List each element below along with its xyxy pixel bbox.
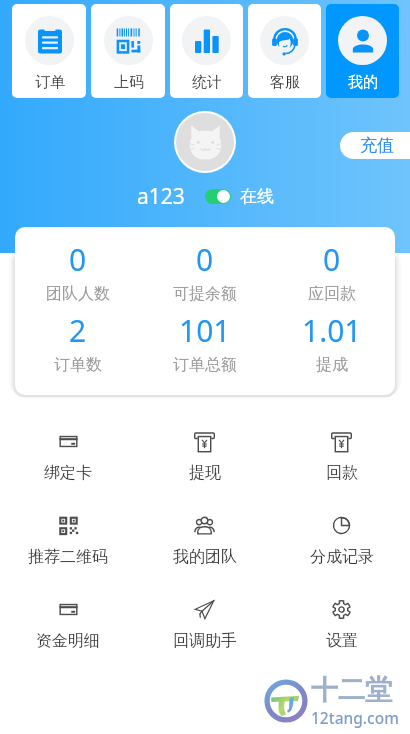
button[interactable]: 0 (15, 239, 141, 304)
staticText: 回调助手 (173, 631, 237, 651)
staticText: 0 (196, 239, 214, 280)
staticText: 资金明细 (36, 631, 100, 651)
staticText: 101 (179, 310, 231, 351)
button[interactable]: 客服 (248, 4, 321, 98)
staticText: 分成记录 (310, 547, 374, 567)
button[interactable]: 2 (15, 310, 141, 375)
staticText: 回款 (326, 463, 358, 483)
button[interactable]: 充值 (340, 132, 410, 159)
staticText: 订单 (35, 73, 65, 92)
button[interactable]: 推荐二维码 (0, 499, 136, 583)
staticText: 1.01 (302, 310, 362, 351)
button[interactable]: 我的 (326, 4, 399, 98)
button[interactable]: 1.01 (268, 310, 395, 375)
button[interactable]: 我的团队 (136, 499, 273, 583)
button[interactable]: 0 (141, 239, 268, 304)
button[interactable]: 回调助手 (136, 583, 273, 667)
button[interactable]: 统计 (170, 4, 243, 98)
staticText: 应回款 (308, 284, 356, 304)
button[interactable]: 0 (268, 239, 395, 304)
staticText: 0 (69, 239, 87, 280)
staticText: 客服 (270, 73, 300, 92)
staticText: 12tang.com (311, 707, 399, 728)
button[interactable]: 分成记录 (273, 499, 410, 583)
button[interactable]: Online toggle (205, 189, 231, 204)
staticText: 可提余额 (173, 284, 237, 304)
staticText: 团队人数 (46, 284, 110, 304)
button[interactable]: 设置 (273, 583, 410, 667)
button[interactable]: 上码 (91, 4, 165, 98)
staticText: 提现 (189, 463, 221, 483)
staticText: 绑定卡 (44, 463, 92, 483)
staticText: 我的 (348, 73, 378, 92)
staticText: 十二堂 (311, 673, 392, 707)
staticText: 2 (69, 310, 87, 351)
staticText: 我的团队 (173, 547, 237, 567)
staticText: 设置 (326, 631, 358, 651)
button[interactable]: 绑定卡 (0, 415, 136, 499)
staticText: 订单总额 (173, 355, 237, 375)
button[interactable]: Avatar (176, 113, 234, 171)
staticText: 充值 (360, 135, 394, 156)
staticText: 统计 (192, 73, 222, 92)
button[interactable]: 资金明细 (0, 583, 136, 667)
button[interactable]: 101 (141, 310, 268, 375)
button[interactable]: 订单 (12, 4, 86, 98)
staticText: a123 (137, 182, 185, 211)
staticText: 在线 (240, 186, 274, 207)
button[interactable]: 回款 (273, 415, 410, 499)
staticText: 提成 (316, 355, 348, 375)
staticText: 0 (323, 239, 341, 280)
staticText: 推荐二维码 (28, 547, 108, 567)
staticText: 上码 (114, 73, 144, 92)
button[interactable]: 提现 (136, 415, 273, 499)
staticText: 订单数 (54, 355, 102, 375)
